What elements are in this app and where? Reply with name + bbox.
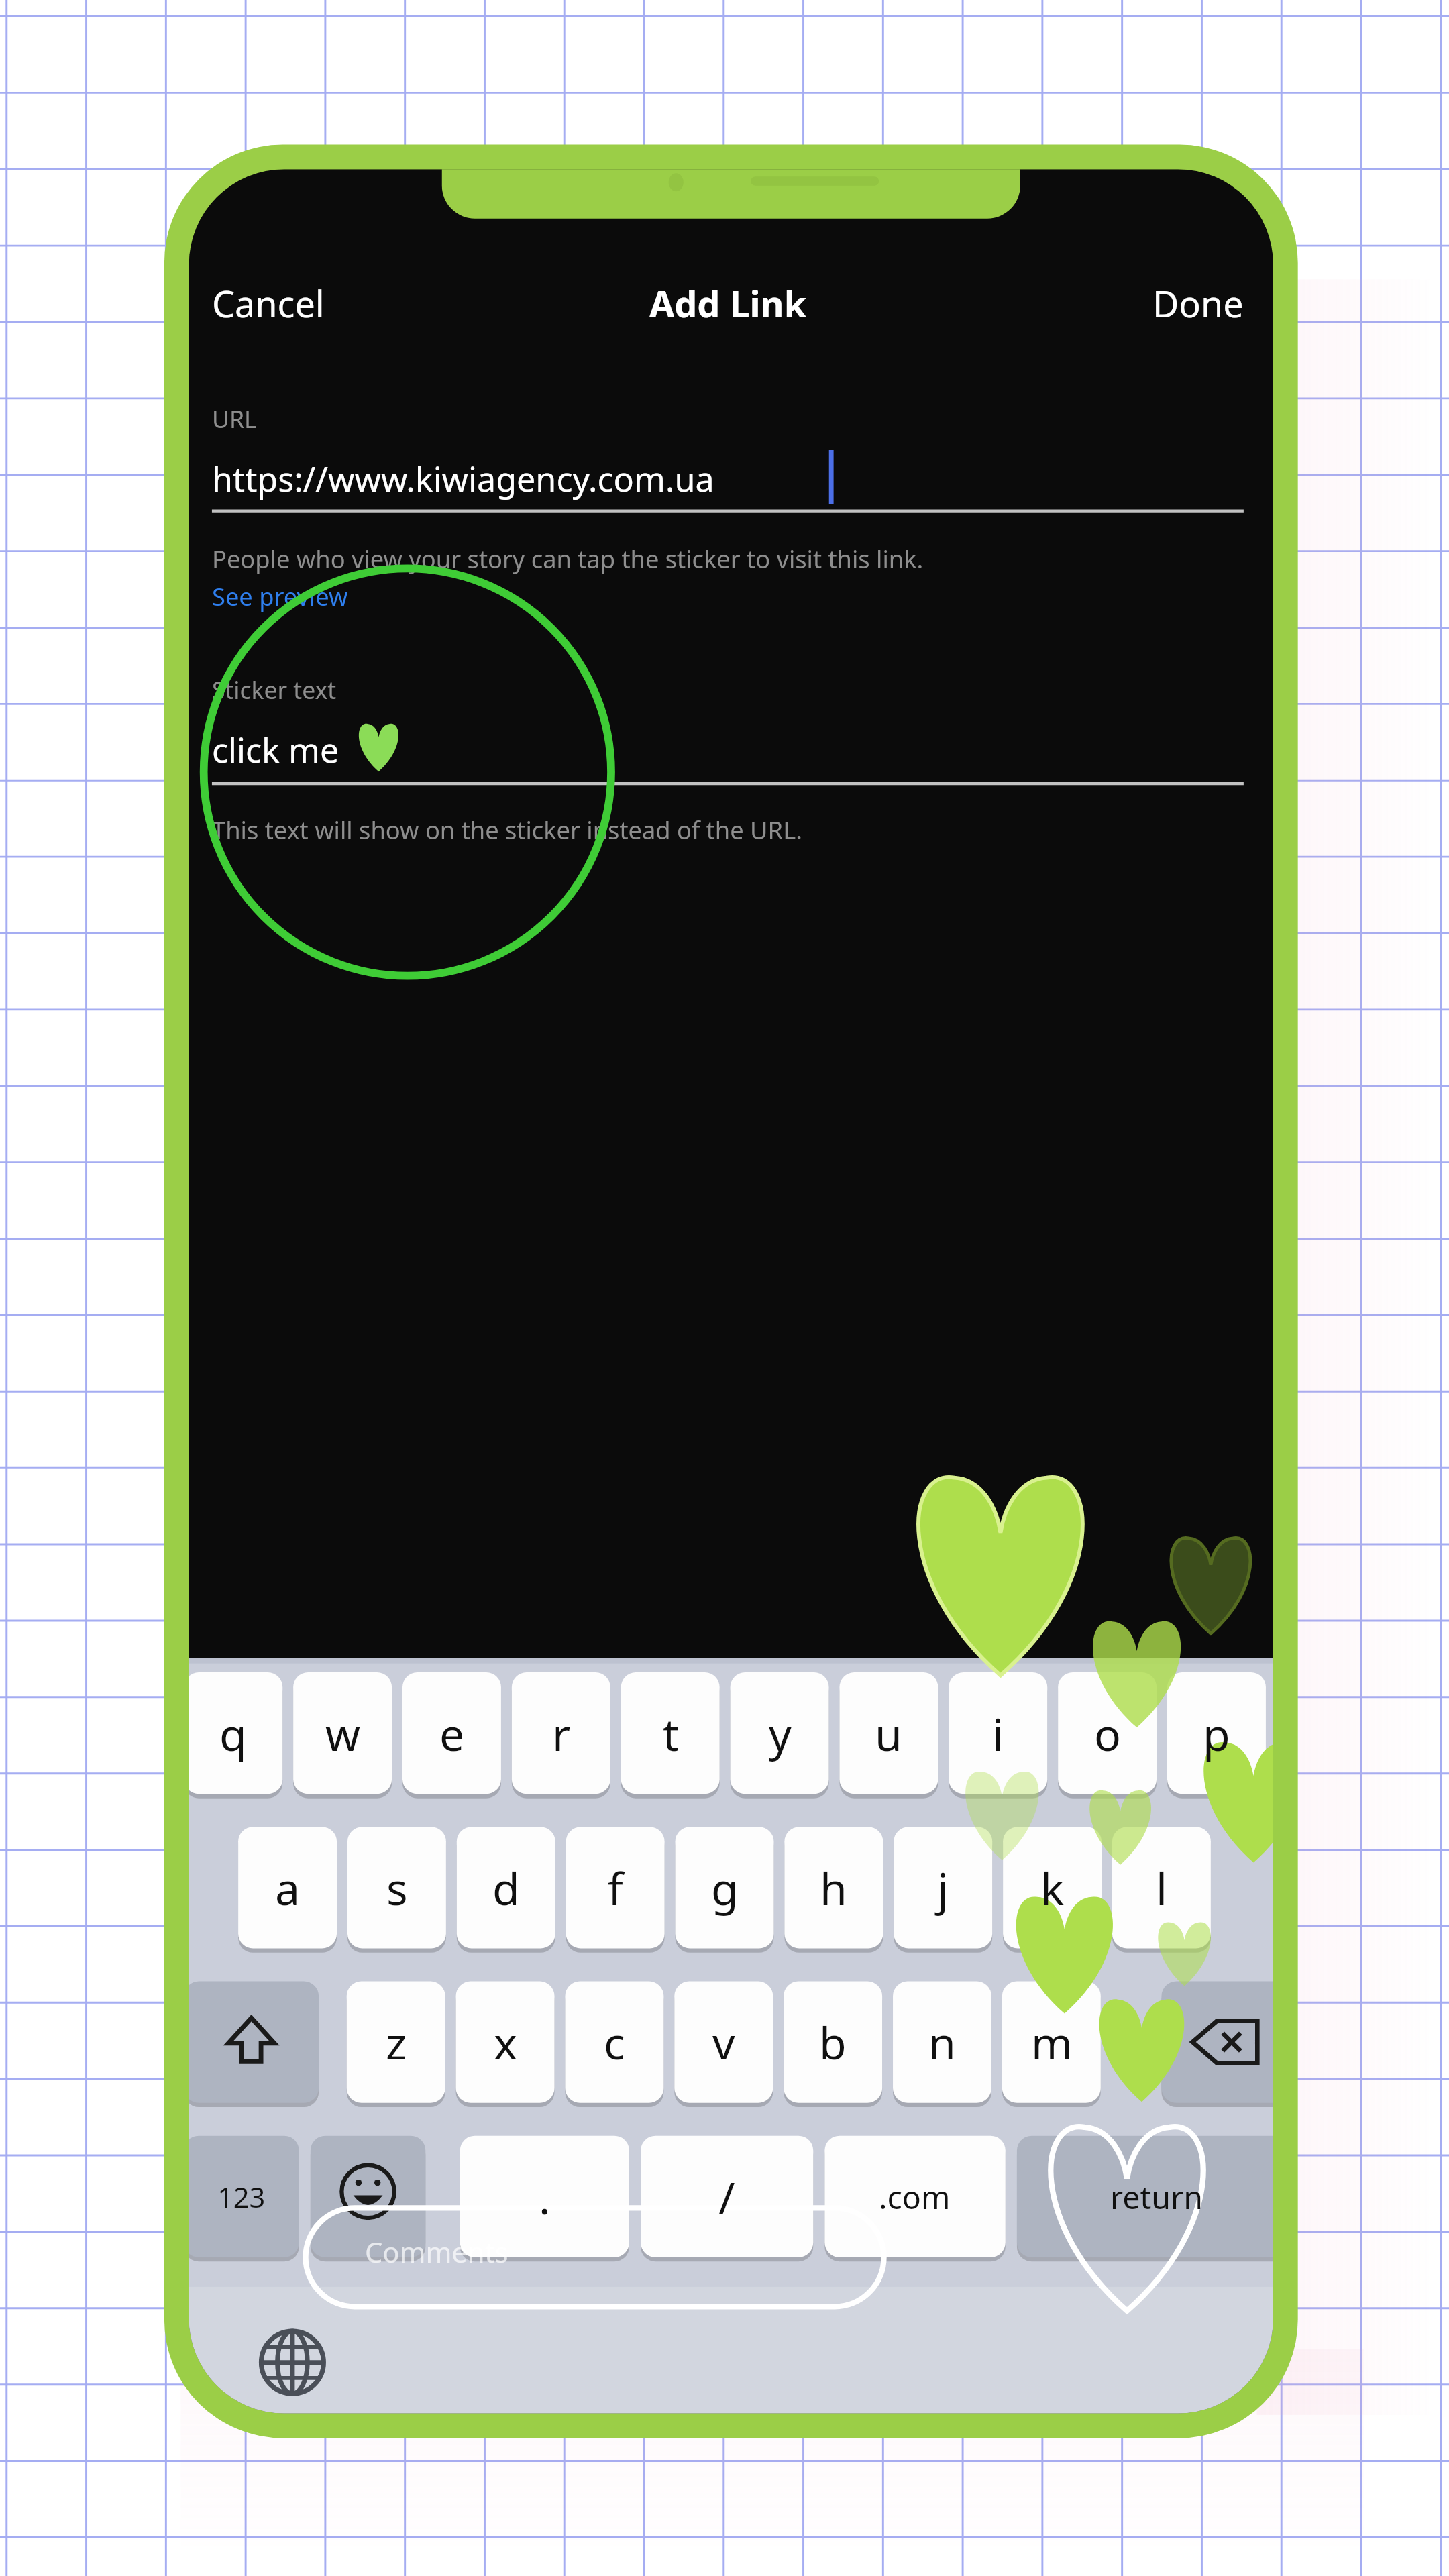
button[interactable]: t: [621, 1672, 720, 1794]
staticText: g: [711, 1858, 739, 1918]
staticText: Cancel: [212, 278, 325, 327]
staticText: w: [325, 1703, 360, 1764]
staticText: e: [439, 1703, 465, 1764]
staticText: return: [1110, 2176, 1203, 2218]
button[interactable]: r: [512, 1672, 610, 1794]
staticText: click me: [212, 727, 339, 772]
staticText: See preview: [212, 580, 348, 612]
button[interactable]: c: [565, 1981, 663, 2102]
staticText: i: [992, 1703, 1004, 1764]
button[interactable]: v: [674, 1981, 773, 2102]
staticText: .com: [879, 2176, 951, 2218]
button[interactable]: Change keyboard language: [250, 2320, 338, 2408]
button[interactable]: z: [347, 1981, 445, 2102]
button[interactable]: e: [402, 1672, 501, 1794]
staticText: l: [1156, 1858, 1168, 1918]
staticText: n: [928, 2012, 956, 2072]
staticText: Done: [1152, 278, 1244, 327]
staticText: y: [769, 1703, 792, 1764]
button[interactable]: l: [1112, 1827, 1211, 1948]
button[interactable]: p: [1167, 1672, 1266, 1794]
staticText: d: [492, 1858, 520, 1918]
button[interactable]: h: [784, 1827, 883, 1948]
button[interactable]: a: [238, 1827, 337, 1948]
button[interactable]: Backspace: [1161, 1981, 1296, 2102]
staticText: f: [608, 1858, 623, 1918]
staticText: Sticker text: [212, 674, 337, 706]
button[interactable]: x: [456, 1981, 555, 2102]
staticText: o: [1094, 1703, 1121, 1764]
staticText: a: [275, 1858, 301, 1918]
button[interactable]: q: [184, 1672, 282, 1794]
staticText: People who view your story can tap the s…: [212, 542, 924, 575]
staticText: m: [1031, 2012, 1073, 2072]
button[interactable]: Done: [1084, 263, 1248, 342]
staticText: c: [604, 2012, 625, 2072]
staticText: b: [819, 2012, 847, 2072]
button[interactable]: k: [1003, 1827, 1102, 1948]
button[interactable]: b: [784, 1981, 882, 2102]
staticText: p: [1203, 1703, 1230, 1764]
staticText: https://www.kiwiagency.com.ua: [212, 455, 714, 501]
staticText: j: [937, 1858, 949, 1918]
staticText: s: [386, 1858, 408, 1918]
staticText: z: [386, 2012, 407, 2072]
button[interactable]: g: [676, 1827, 774, 1948]
button[interactable]: s: [347, 1827, 446, 1948]
staticText: u: [875, 1703, 902, 1764]
staticText: This text will show on the sticker inste…: [212, 813, 802, 846]
button[interactable]: n: [893, 1981, 991, 2102]
button[interactable]: Emoji: [311, 2136, 425, 2257]
button[interactable]: return: [1017, 2136, 1296, 2257]
staticText: URL: [212, 402, 257, 435]
staticText: r: [552, 1703, 571, 1764]
button[interactable]: o: [1058, 1672, 1157, 1794]
button[interactable]: .: [460, 2136, 629, 2257]
button[interactable]: .com: [824, 2136, 1005, 2257]
button[interactable]: u: [839, 1672, 938, 1794]
staticText: h: [820, 1858, 847, 1918]
button[interactable]: d: [457, 1827, 555, 1948]
staticText: x: [494, 2012, 517, 2072]
staticText: Comments: [365, 2233, 508, 2271]
button[interactable]: 123: [184, 2136, 299, 2257]
button[interactable]: click me: [212, 720, 1244, 779]
button[interactable]: i: [949, 1672, 1047, 1794]
button[interactable]: https://www.kiwiagency.com.ua: [212, 449, 1244, 508]
staticText: /: [718, 2167, 735, 2227]
button[interactable]: Cancel: [205, 263, 402, 342]
button[interactable]: See preview: [212, 580, 348, 612]
button[interactable]: Shift: [184, 1981, 319, 2102]
staticText: Add Link: [649, 278, 807, 327]
staticText: t: [663, 1703, 679, 1764]
staticText: q: [219, 1703, 247, 1764]
button[interactable]: w: [293, 1672, 392, 1794]
staticText: k: [1040, 1858, 1065, 1918]
staticText: v: [712, 2012, 735, 2072]
button[interactable]: f: [566, 1827, 665, 1948]
staticText: 123: [217, 2178, 266, 2216]
button[interactable]: m: [1002, 1981, 1101, 2102]
button[interactable]: /: [641, 2136, 813, 2257]
staticText: .: [539, 2167, 551, 2227]
button[interactable]: j: [894, 1827, 992, 1948]
button[interactable]: y: [731, 1672, 829, 1794]
